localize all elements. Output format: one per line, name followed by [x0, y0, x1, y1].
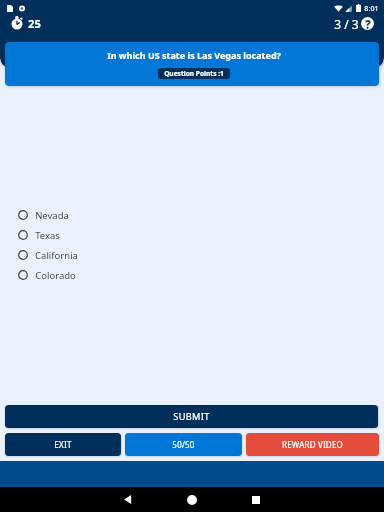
staticText: Colorado	[35, 269, 76, 282]
button[interactable]: SUBMIT	[5, 405, 378, 428]
button[interactable]: 50/50	[125, 433, 242, 456]
staticText: 8:01	[364, 3, 379, 13]
button[interactable]: Back	[106, 487, 150, 512]
staticText: 3 / 3	[334, 16, 359, 32]
staticText: REWARD VIDEO	[282, 439, 343, 450]
button[interactable]: Nevada	[18, 205, 384, 225]
button[interactable]: Recents	[234, 487, 278, 512]
staticText: ?	[365, 17, 371, 30]
staticText: In which US state is Las Vegas located?	[107, 49, 281, 61]
button[interactable]: Texas	[18, 225, 384, 245]
button[interactable]: EXIT	[5, 433, 121, 456]
button[interactable]: REWARD VIDEO	[246, 433, 379, 456]
staticText: Nevada	[35, 209, 69, 222]
button[interactable]: Home	[170, 487, 214, 512]
button[interactable]: In which US state is Las Vegas located?	[5, 42, 379, 86]
staticText: Question Points :1	[164, 69, 224, 78]
staticText: EXIT	[54, 439, 72, 450]
staticText: Texas	[35, 229, 60, 242]
staticText: California	[35, 249, 78, 262]
other: Timer	[11, 17, 23, 30]
staticText: 25	[28, 16, 41, 31]
button[interactable]: Help	[361, 17, 374, 30]
button[interactable]: California	[18, 245, 384, 265]
staticText: SUBMIT	[173, 410, 210, 423]
button[interactable]: Colorado	[18, 265, 384, 285]
staticText: 50/50	[172, 439, 195, 450]
